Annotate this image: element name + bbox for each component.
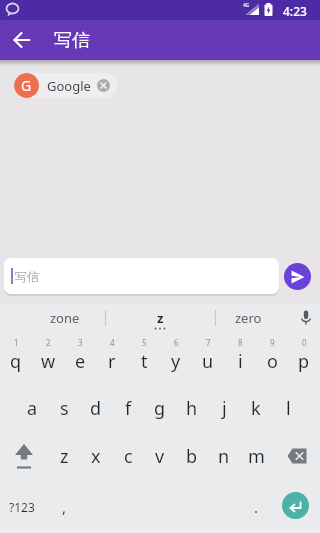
staticText: d [90, 396, 102, 421]
button[interactable]: h [176, 384, 208, 432]
staticText: l [286, 396, 291, 421]
staticText: e [75, 349, 86, 374]
staticText: i [238, 349, 243, 374]
staticText: r [108, 349, 116, 374]
button[interactable]: d [80, 384, 112, 432]
staticText: 0 [302, 337, 307, 348]
staticText: g [154, 396, 166, 421]
staticText: c [124, 444, 133, 469]
staticText: s [60, 396, 69, 421]
button[interactable]: e [64, 337, 96, 385]
staticText: q [10, 349, 22, 374]
button[interactable]: b [176, 432, 208, 480]
button[interactable]: z [48, 432, 80, 480]
button[interactable]: q [0, 337, 32, 385]
staticText: z [60, 444, 69, 469]
staticText: z [157, 309, 164, 327]
button[interactable] [284, 263, 311, 290]
button[interactable]: G [14, 73, 117, 98]
button[interactable]: i [224, 337, 256, 385]
staticText: o [267, 349, 278, 374]
button[interactable]: j [208, 384, 240, 432]
staticText: zero [235, 309, 262, 327]
staticText: k [251, 396, 261, 421]
staticText: 3 [78, 337, 83, 348]
staticText: p [298, 349, 310, 374]
staticText: b [186, 444, 198, 469]
button[interactable]: zone [20, 303, 110, 333]
staticText: Google [47, 77, 91, 95]
staticText: 4 [110, 337, 115, 348]
button[interactable]: f [112, 384, 144, 432]
button[interactable]: y [160, 337, 192, 385]
staticText: 6 [174, 337, 179, 348]
button[interactable]: t [128, 337, 160, 385]
staticText: v [155, 444, 165, 469]
button[interactable] [273, 432, 320, 480]
staticText: 7 [206, 337, 211, 348]
staticText: j [222, 396, 227, 421]
staticText: f [125, 396, 132, 421]
button[interactable]: w [32, 337, 64, 385]
staticText: 写信 [15, 269, 39, 284]
button[interactable]: zero [205, 303, 291, 333]
button[interactable]: v [144, 432, 176, 480]
staticText: w [41, 349, 56, 374]
staticText: G [21, 76, 32, 95]
button[interactable]: x [80, 432, 112, 480]
button[interactable]: c [112, 432, 144, 480]
staticText: t [141, 349, 148, 374]
button[interactable]: m [240, 432, 272, 480]
staticText: . [254, 497, 259, 517]
staticText: u [202, 349, 214, 374]
staticText: zone [50, 309, 80, 327]
button[interactable]: , [48, 480, 80, 533]
button[interactable]: l [272, 384, 304, 432]
button[interactable]: p [288, 337, 320, 385]
button[interactable]: ?123 [0, 480, 44, 533]
staticText: 5 [142, 337, 147, 348]
staticText: 1 [14, 337, 19, 348]
button[interactable]: a [16, 384, 48, 432]
staticText: a [27, 396, 38, 421]
staticText: 写信 [54, 29, 90, 52]
button[interactable]: n [208, 432, 240, 480]
button[interactable] [292, 304, 320, 332]
button[interactable] [0, 432, 48, 480]
button[interactable]: r [96, 337, 128, 385]
button[interactable]: g [144, 384, 176, 432]
button[interactable] [282, 492, 309, 519]
button[interactable]: z [115, 303, 205, 333]
staticText: y [171, 349, 181, 374]
button[interactable]: o [256, 337, 288, 385]
staticText: 8 [238, 337, 243, 348]
staticText: , [62, 497, 67, 517]
staticText: x [91, 444, 101, 469]
staticText: 4:23 [283, 3, 307, 19]
staticText: ?123 [9, 499, 35, 515]
staticText: 2 [46, 337, 51, 348]
staticText: m [248, 444, 265, 469]
staticText: 9 [270, 337, 275, 348]
staticText: n [218, 444, 230, 469]
button[interactable]: 写信 [4, 258, 279, 294]
button[interactable]: u [192, 337, 224, 385]
staticText: h [186, 396, 198, 421]
button[interactable] [6, 24, 38, 56]
button[interactable]: k [240, 384, 272, 432]
button[interactable]: . [240, 480, 272, 533]
staticText: 4G [243, 2, 250, 9]
button[interactable]: s [48, 384, 80, 432]
